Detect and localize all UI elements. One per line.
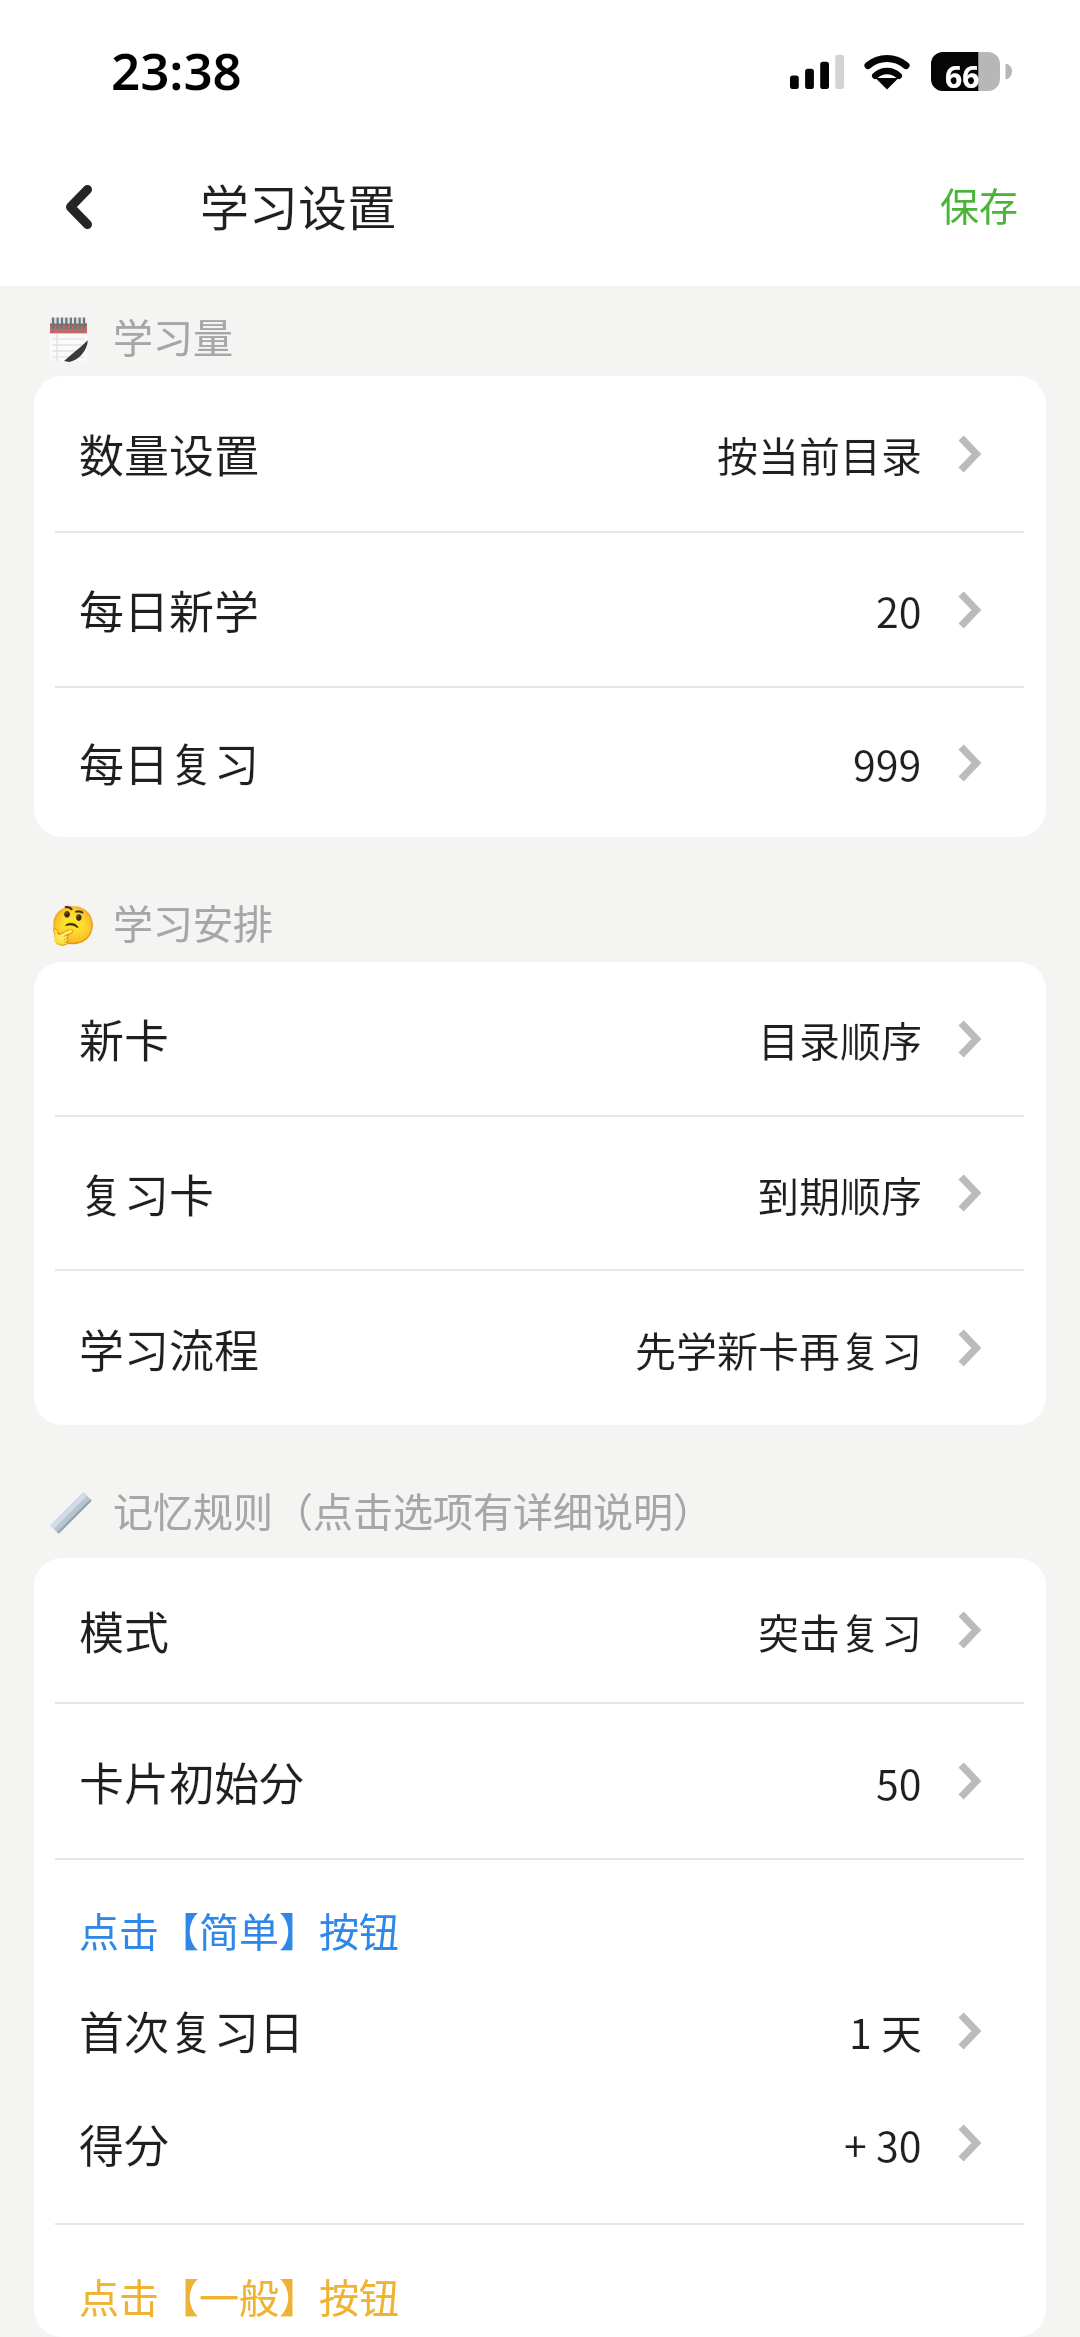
staticText: 复习卡 xyxy=(79,1161,215,1226)
button[interactable]: 首次复习日 xyxy=(34,1978,1046,2083)
staticText: 保存 xyxy=(940,176,1019,232)
button[interactable]: Back xyxy=(29,157,129,257)
staticText: 记忆规则（点击选项有详细说明） xyxy=(113,1481,713,1539)
staticText: 按当前目录 xyxy=(717,424,922,483)
staticText: 得分 xyxy=(79,2111,170,2176)
staticText: 突击复习 xyxy=(758,1601,922,1660)
staticText: 66 xyxy=(945,56,980,97)
button[interactable]: 每日复习 xyxy=(34,688,1046,837)
staticText: 999 xyxy=(853,733,922,792)
staticText: 🤔 xyxy=(50,904,97,947)
staticText: 每日新学 xyxy=(79,577,260,642)
staticText: 模式 xyxy=(79,1598,170,1663)
button[interactable]: 模式 xyxy=(34,1558,1046,1702)
staticText: 50 xyxy=(876,1752,922,1811)
button[interactable]: 新卡 xyxy=(34,962,1046,1115)
staticText: 23:38 xyxy=(111,35,242,104)
staticText: 卡片初始分 xyxy=(79,1749,305,1814)
staticText: 20 xyxy=(876,580,922,639)
staticText: 学习设置 xyxy=(200,169,397,240)
staticText: 新卡 xyxy=(79,1006,170,1071)
button[interactable]: 得分 xyxy=(34,2083,1046,2203)
staticText: 学习流程 xyxy=(79,1316,260,1381)
staticText: 每日复习 xyxy=(79,730,260,795)
staticText: 点击【一般】按钮 xyxy=(79,2267,399,2325)
button[interactable]: 数量设置 xyxy=(34,376,1046,531)
staticText: 先学新卡再复习 xyxy=(635,1319,922,1378)
staticText: 学习安排 xyxy=(113,893,273,951)
staticText: + 30 xyxy=(844,2114,922,2173)
button[interactable]: 卡片初始分 xyxy=(34,1704,1046,1858)
staticText: 学习量 xyxy=(113,307,233,365)
staticText: 目录顺序 xyxy=(758,1009,922,1068)
staticText: 首次复习日 xyxy=(79,1998,305,2063)
staticText: 数量设置 xyxy=(79,421,260,486)
button[interactable]: 学习流程 xyxy=(34,1271,1046,1425)
button[interactable]: 每日新学 xyxy=(34,533,1046,686)
staticText: 1 天 xyxy=(849,2001,922,2060)
staticText: 到期顺序 xyxy=(758,1164,922,1223)
button[interactable]: 点击【一般】按钮 xyxy=(34,2225,1046,2337)
button[interactable]: 复习卡 xyxy=(34,1117,1046,1269)
button[interactable]: 保存 xyxy=(916,158,1043,250)
staticText: 点击【简单】按钮 xyxy=(79,1901,399,1959)
button[interactable]: 点击【简单】按钮 xyxy=(34,1882,1046,1978)
